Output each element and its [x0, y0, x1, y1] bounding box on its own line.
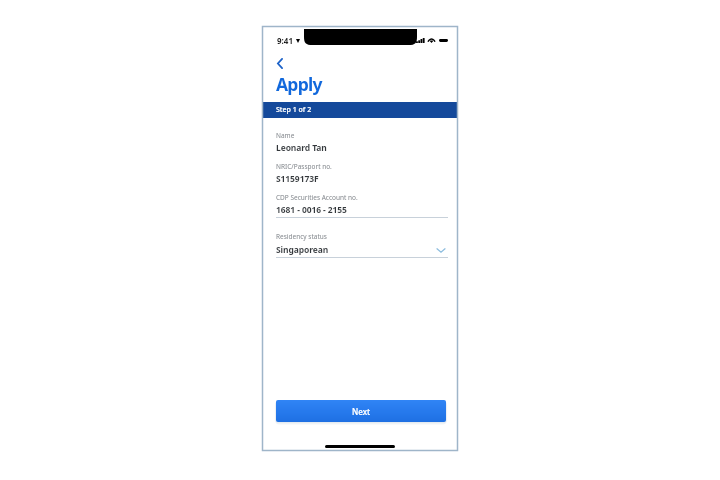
- staticText: Residency status: [276, 232, 327, 241]
- staticText: Singaporean: [276, 244, 434, 256]
- button[interactable]: Open residency status list: [434, 243, 448, 257]
- button[interactable]: Back: [271, 54, 289, 72]
- button[interactable]: NRIC/Passport no.: [276, 162, 448, 185]
- button[interactable]: Residency status: [276, 232, 448, 258]
- staticText: Step 1 of 2: [276, 105, 312, 115]
- staticText: Next: [352, 406, 371, 417]
- button[interactable]: Next: [276, 400, 446, 422]
- staticText: Name: [276, 131, 295, 140]
- staticText: NRIC/Passport no.: [276, 162, 332, 171]
- staticText: CDP Securities Account no.: [276, 193, 358, 202]
- staticText: Leonard Tan: [276, 142, 448, 154]
- button[interactable]: Name: [276, 131, 448, 154]
- staticText: 1681 - 0016 - 2155: [276, 204, 448, 216]
- staticText: S1159173F: [276, 173, 448, 185]
- staticText: Apply: [276, 72, 322, 96]
- staticText: 9:41: [277, 35, 293, 46]
- button[interactable]: CDP Securities Account no.: [276, 193, 448, 218]
